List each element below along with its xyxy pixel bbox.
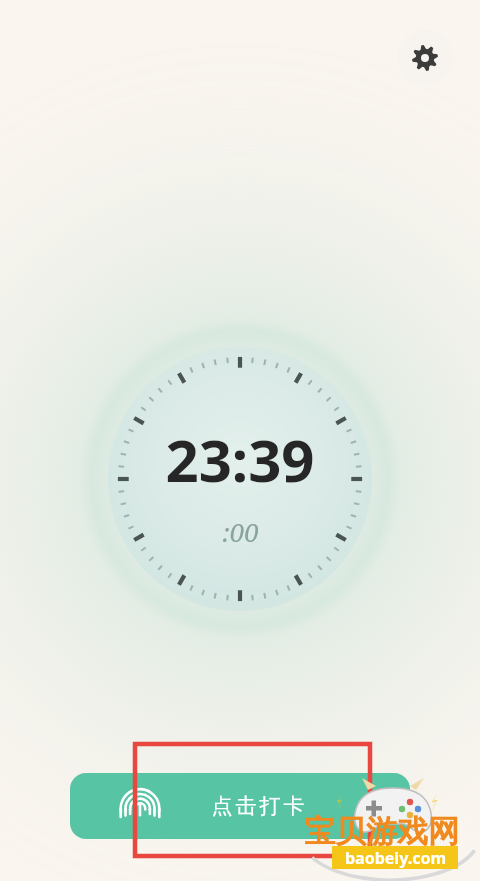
staticText: :00	[222, 514, 259, 549]
staticText: baobeiy.com	[345, 847, 446, 869]
button[interactable]: 点击打卡	[70, 773, 410, 839]
staticText: 23:39	[165, 420, 315, 499]
staticText: 点击打卡	[210, 793, 306, 819]
button[interactable]: Settings	[397, 30, 453, 86]
staticText: 宝贝游戏网	[304, 812, 459, 851]
